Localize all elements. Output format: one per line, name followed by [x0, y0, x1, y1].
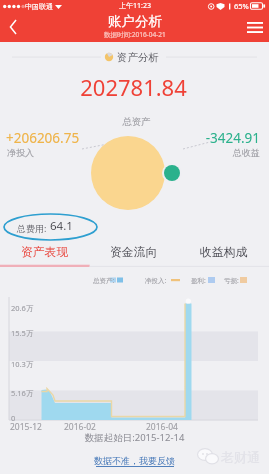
staticText: 2015-12	[10, 421, 42, 433]
staticText: 5.16万	[11, 388, 34, 398]
staticText: 数据时间:2016-04-21	[104, 30, 166, 39]
staticText: 20.6万	[11, 303, 34, 313]
staticText: -3424.91	[0, 129, 260, 147]
button[interactable]: 资产表现	[0, 240, 89, 267]
button[interactable]: Back	[0, 14, 26, 40]
staticText: 总收益	[0, 147, 260, 158]
staticText: 老财通	[221, 449, 260, 465]
staticText: 2016-02	[64, 421, 96, 433]
staticText: 0	[11, 413, 16, 423]
staticText: 资产分析	[117, 51, 159, 63]
button[interactable]: 资金流向	[89, 240, 179, 267]
staticText: 2016-04	[146, 421, 178, 433]
staticText: 数据起始日:2015-12-14	[0, 431, 269, 444]
button[interactable]: 数据不准，我要反馈	[94, 455, 175, 467]
staticText: 中国联通	[25, 2, 53, 11]
staticText: 65%	[234, 1, 249, 11]
staticText: 总资产	[2, 116, 269, 128]
staticText: 64.1	[50, 218, 73, 234]
staticText: 上午11:23	[119, 1, 151, 11]
button[interactable]: Menu	[241, 13, 269, 41]
staticText: 账户分析	[108, 13, 162, 30]
staticText: 资金流向	[110, 245, 158, 260]
staticText: 10.3万	[11, 359, 34, 369]
staticText: 202781.84	[0, 72, 268, 102]
staticText: 总资产:	[93, 276, 115, 285]
staticText: 盈利:	[191, 276, 206, 285]
staticText: 数据不准，我要反馈	[94, 455, 175, 466]
staticText: 收益构成	[200, 245, 248, 260]
staticText: 亏损:	[224, 276, 239, 285]
staticText: 净投入:	[145, 276, 167, 285]
staticText: +206206.75	[6, 129, 80, 147]
staticText: 15.5万	[11, 328, 34, 338]
staticText: 总费用:	[17, 222, 47, 234]
staticText: 资产表现	[21, 245, 69, 260]
staticText: 净投入	[7, 147, 34, 158]
button[interactable]: 收益构成	[179, 240, 269, 267]
